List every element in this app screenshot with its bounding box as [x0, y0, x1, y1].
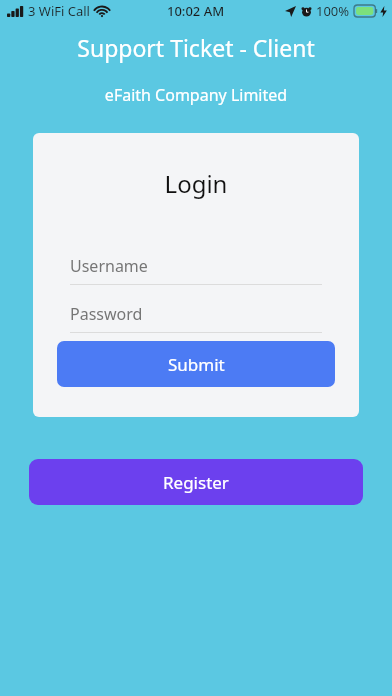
other: Charging — [380, 6, 387, 17]
other: Alarm — [301, 6, 312, 17]
button[interactable]: Password — [70, 295, 322, 333]
staticText: 10:02 AM — [167, 2, 225, 20]
staticText: 100% — [316, 2, 350, 20]
other: Cellular signal — [7, 6, 24, 17]
staticText: Username — [70, 255, 148, 277]
other: Wi-Fi — [95, 6, 109, 17]
button[interactable]: Submit — [57, 341, 335, 387]
button[interactable]: Register — [29, 459, 363, 505]
button[interactable]: Username — [70, 247, 322, 285]
staticText: eFaith Company Limited — [0, 84, 392, 106]
staticText: Password — [70, 303, 143, 325]
staticText: 3 WiFi Call — [28, 2, 90, 20]
staticText: Register — [163, 471, 229, 494]
staticText: Support Ticket - Client — [0, 32, 392, 63]
staticText: Login — [33, 167, 359, 200]
other: Location — [285, 6, 296, 17]
staticText: Submit — [168, 353, 225, 376]
other: Battery 100 percent — [354, 5, 378, 17]
